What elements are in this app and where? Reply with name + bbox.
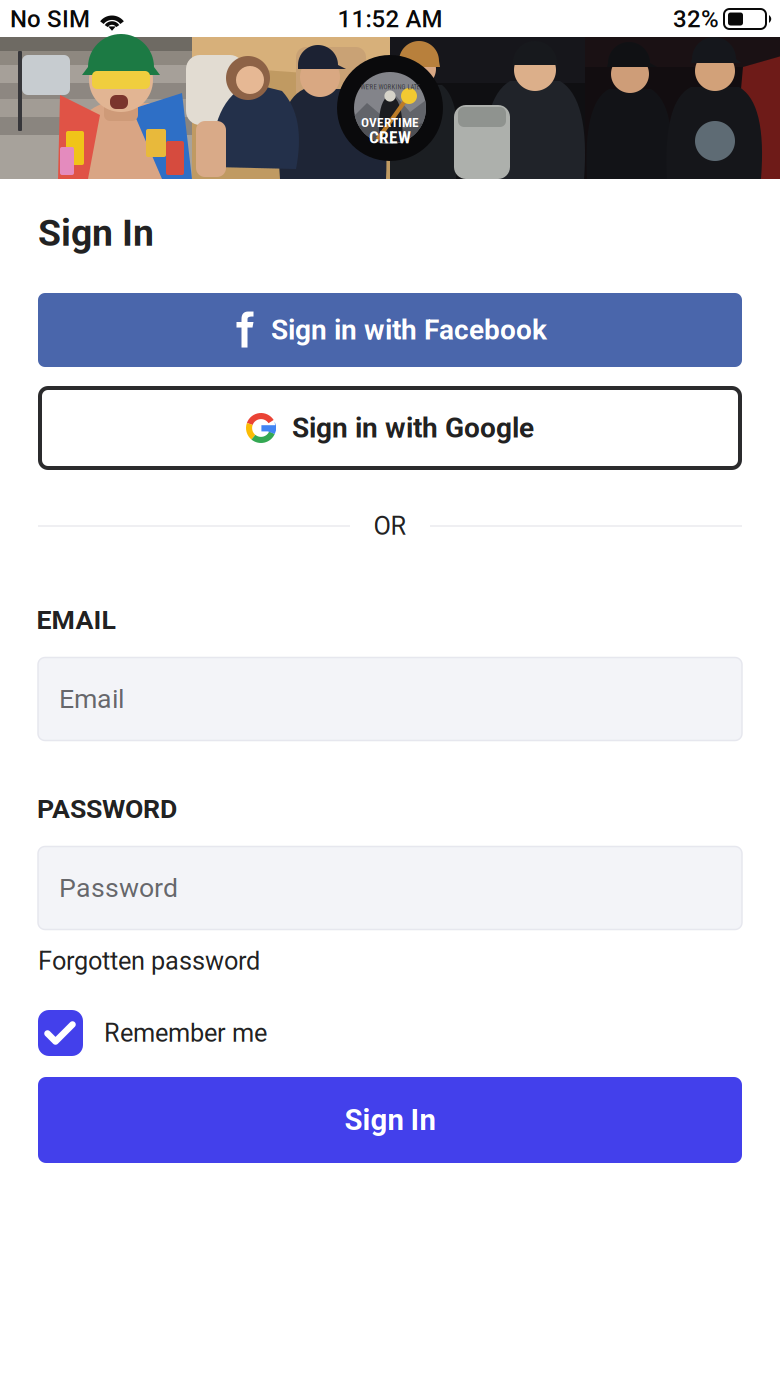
staticText: Email [59, 683, 124, 715]
staticText: Sign in with Google [292, 412, 534, 444]
staticText: Sign in with Facebook [271, 314, 547, 346]
staticText: CREW [369, 127, 411, 147]
staticText: WE'RE WORKING LATE [360, 83, 419, 91]
button[interactable]: Forgotten password [38, 943, 278, 979]
staticText: Sign In [38, 211, 154, 255]
staticText: EMAIL [36, 604, 115, 636]
staticText: OVERTIME [361, 114, 419, 130]
button[interactable]: Remember me [38, 1010, 338, 1056]
staticText: OR [373, 511, 406, 541]
button[interactable]: Sign in with Google [40, 388, 740, 468]
staticText: 11:52 AM [337, 5, 442, 33]
button[interactable]: Sign In [38, 1077, 742, 1163]
staticText: Remember me [104, 1018, 267, 1048]
staticText: Sign In [344, 1103, 435, 1137]
staticText: 32% [673, 5, 719, 33]
button[interactable]: Sign in with Facebook [38, 293, 742, 367]
staticText: Forgotten password [38, 946, 260, 976]
staticText: PASSWORD [37, 793, 177, 825]
staticText: Password [59, 872, 178, 904]
staticText: No SIM [10, 5, 90, 33]
